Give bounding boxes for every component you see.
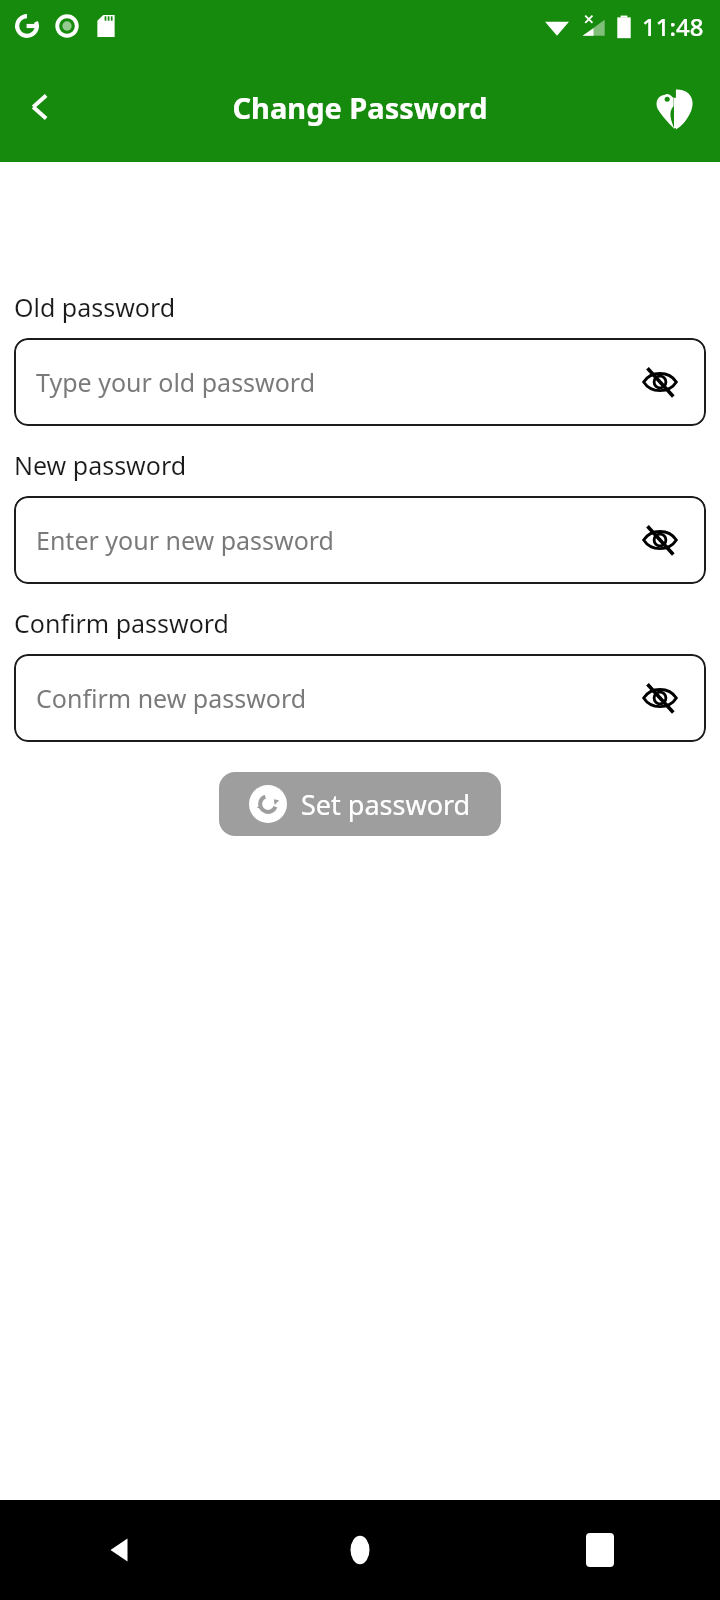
button[interactable]: Enter your new password	[14, 496, 706, 584]
staticText: Type your old password	[36, 365, 636, 399]
button[interactable]: Show password	[636, 674, 684, 722]
staticText: New password	[14, 448, 187, 482]
staticText: Set password	[301, 786, 471, 823]
staticText: Old password	[14, 290, 176, 324]
button[interactable]: Confirm new password	[14, 654, 706, 742]
button[interactable]: Back	[8, 75, 72, 139]
button[interactable]: App logo	[644, 76, 706, 138]
staticText: 11:48	[642, 10, 704, 43]
staticText: Confirm password	[14, 606, 229, 640]
button[interactable]: Type your old password	[14, 338, 706, 426]
staticText: Enter your new password	[36, 523, 636, 557]
button[interactable]: Back	[0, 1500, 240, 1600]
staticText: Change Password	[232, 88, 488, 127]
staticText: Confirm new password	[36, 681, 636, 715]
button[interactable]: Home	[240, 1500, 480, 1600]
button[interactable]: Recent apps	[480, 1500, 720, 1600]
button[interactable]: Set password	[219, 772, 501, 836]
button[interactable]: Show password	[636, 516, 684, 564]
button[interactable]: Show password	[636, 358, 684, 406]
